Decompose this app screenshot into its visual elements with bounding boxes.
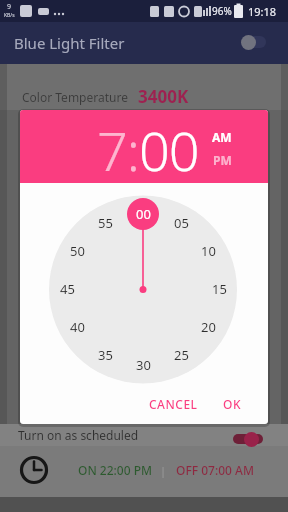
staticText: 00 (136, 205, 151, 223)
button[interactable] (229, 427, 267, 451)
staticText: Turn on as scheduled (18, 427, 139, 443)
staticText: 55 (98, 214, 113, 232)
staticText: 30 (136, 356, 151, 374)
staticText: 3400K (138, 85, 189, 107)
staticText: 40 (70, 318, 85, 336)
button[interactable] (18, 454, 50, 486)
staticText: 35 (98, 346, 113, 364)
staticText: OK (223, 396, 241, 412)
staticText: 96% (212, 4, 232, 18)
staticText: OFF 07:00 AM (176, 462, 254, 478)
staticText: 05 (174, 214, 189, 232)
staticText: 15 (212, 280, 227, 298)
staticText: CANCEL (149, 396, 198, 412)
staticText: 45 (60, 280, 75, 298)
staticText: 50 (70, 242, 85, 260)
button[interactable] (238, 30, 270, 54)
staticText: Blue Light Filter (14, 33, 125, 53)
staticText: Color Temperature (22, 89, 128, 105)
staticText: 19:18 (248, 4, 277, 19)
staticText: 9 (7, 2, 12, 12)
staticText: AM (212, 129, 232, 145)
button[interactable]: OK (212, 391, 252, 417)
staticText: 20 (201, 318, 216, 336)
staticText: ON 22:00 PM (78, 462, 153, 478)
staticText: PM (213, 152, 232, 168)
staticText: | (160, 463, 167, 478)
staticText: 10 (201, 242, 216, 260)
staticText: 25 (174, 346, 189, 364)
staticText: 7:00 (97, 113, 199, 186)
staticText: KB/s (4, 12, 15, 19)
button[interactable]: CANCEL (142, 391, 204, 417)
